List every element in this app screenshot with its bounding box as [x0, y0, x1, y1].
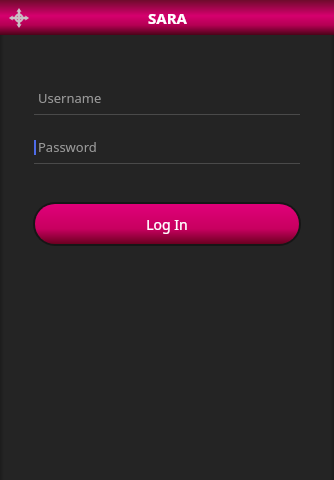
button[interactable]: Password [34, 137, 300, 164]
button[interactable]: Log In [35, 204, 299, 244]
staticText: Password [38, 138, 97, 156]
staticText: SARA [148, 8, 187, 28]
button[interactable]: Username [34, 88, 300, 115]
staticText: Log In [146, 215, 188, 234]
button[interactable]: Move [7, 6, 31, 30]
staticText: Username [38, 89, 102, 107]
